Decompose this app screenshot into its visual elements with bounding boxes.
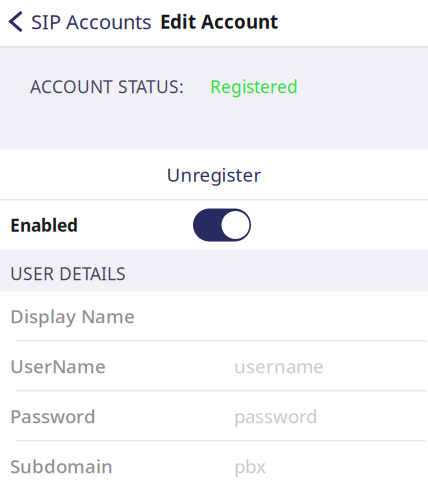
button[interactable]: Display Name [0,291,428,340]
staticText: Password [10,404,96,428]
button[interactable]: Subdomain [0,441,428,487]
staticText: pbx [234,454,266,478]
staticText: Registered [210,75,298,98]
button[interactable]: UserName [0,341,428,390]
staticText: Enabled [10,213,78,236]
button[interactable]: Enabled [0,200,428,249]
staticText: Display Name [10,304,135,328]
button[interactable]: SIP Accounts [0,8,152,34]
staticText: Unregister [166,162,261,187]
staticText: UserName [10,354,106,378]
staticText: Edit Account [160,9,278,34]
staticText: SIP Accounts [31,8,152,35]
staticText: ACCOUNT STATUS: [30,75,184,98]
button[interactable]: Unregister [0,149,428,199]
staticText: Subdomain [10,454,113,478]
staticText: username [234,354,324,378]
staticText: USER DETAILS [10,262,126,285]
staticText: password [234,404,317,428]
button[interactable]: Password [0,391,428,440]
